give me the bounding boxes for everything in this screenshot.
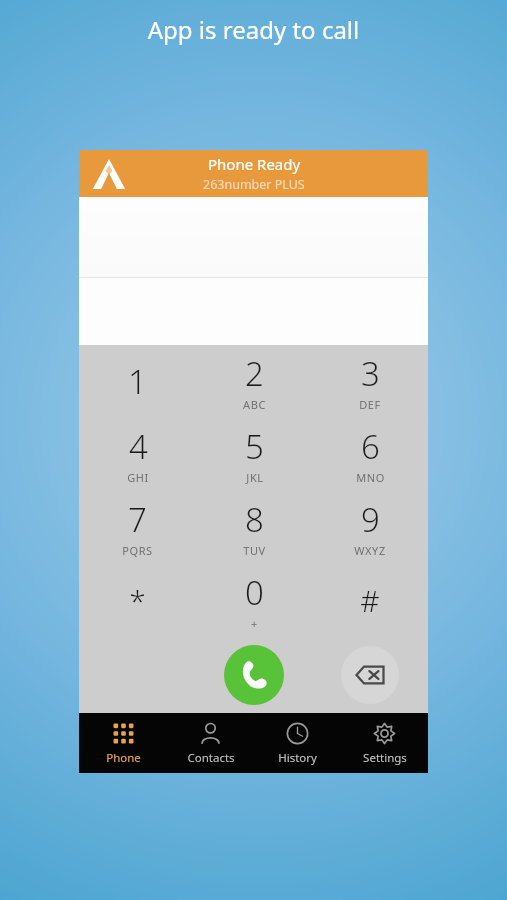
staticText: 7 (128, 497, 147, 542)
button[interactable]: 8 (196, 491, 312, 564)
staticText: App is ready to call (0, 13, 507, 46)
staticText: 8 (245, 497, 264, 542)
staticText: Phone Ready (208, 154, 301, 174)
staticText: ABC (243, 397, 266, 412)
staticText: Contacts (187, 750, 235, 766)
staticText: DEF (359, 397, 381, 412)
button[interactable]: Phone (79, 713, 167, 773)
button[interactable]: 5 (196, 418, 312, 491)
staticText: JKL (246, 470, 264, 485)
staticText: 0 (245, 570, 264, 615)
button[interactable]: 7 (79, 491, 196, 564)
staticText: 5 (245, 424, 264, 469)
button[interactable]: 1 (79, 345, 196, 418)
button[interactable]: History (254, 713, 341, 773)
staticText: 9 (361, 497, 380, 542)
staticText: TUV (243, 543, 266, 558)
button[interactable]: # (312, 564, 428, 637)
staticText: 1 (128, 359, 147, 404)
staticText: + (251, 616, 258, 631)
staticText: 4 (129, 424, 148, 469)
staticText: Phone (106, 750, 141, 766)
staticText: GHI (127, 470, 149, 485)
staticText: MNO (356, 470, 385, 485)
staticText: # (360, 580, 380, 621)
staticText: 2 (245, 351, 264, 396)
button[interactable]: Settings (341, 713, 428, 773)
staticText: History (278, 750, 317, 766)
staticText: WXYZ (354, 543, 386, 558)
button[interactable]: * (79, 564, 196, 637)
button[interactable]: 4 (79, 418, 196, 491)
staticText: 3 (361, 351, 380, 396)
button[interactable]: 3 (312, 345, 428, 418)
staticText: PQRS (122, 543, 153, 558)
staticText: * (129, 580, 146, 621)
other: App logo (91, 156, 127, 192)
staticText: Settings (363, 750, 407, 766)
button[interactable]: 2 (196, 345, 312, 418)
button[interactable]: 6 (312, 418, 428, 491)
button[interactable]: Contacts (167, 713, 254, 773)
staticText: 6 (361, 424, 380, 469)
staticText: 263number PLUS (203, 176, 305, 193)
button[interactable]: Backspace (341, 646, 399, 704)
button[interactable]: Call (224, 645, 284, 705)
button[interactable]: 9 (312, 491, 428, 564)
button[interactable]: 0 (196, 564, 312, 637)
